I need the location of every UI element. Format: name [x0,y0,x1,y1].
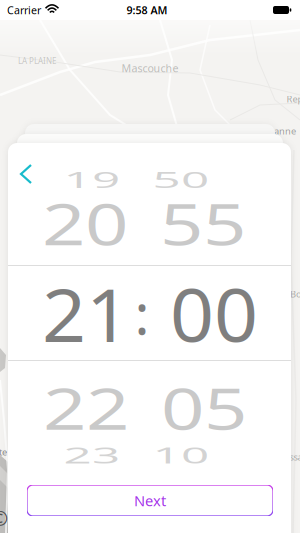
button[interactable]: Back [13,157,39,191]
button[interactable]: Next [27,485,273,516]
staticText: 21 [44,265,128,362]
staticText: 05 [161,357,247,458]
staticText: © [0,505,8,531]
staticText: Bo [290,288,300,300]
staticText: Next [134,491,166,510]
staticText: 19 [49,130,135,229]
staticText: 20 [42,173,128,274]
staticText: 50 [138,130,224,229]
staticText: Carrier [7,3,41,17]
staticText: ssa [289,451,300,463]
staticText: 10 [138,405,224,505]
staticText: LA PLAINE [18,56,56,66]
staticText: 23 [49,405,135,505]
staticText: te [0,446,7,458]
staticText: 9:58 AM [126,3,167,17]
staticText: 00 [172,265,256,362]
staticText: 55 [160,173,246,274]
staticText: Rep [286,93,300,105]
staticText: Mascouche [121,61,178,75]
staticText: : [134,276,149,350]
staticText: 22 [43,357,129,458]
staticText: anne [274,125,296,137]
